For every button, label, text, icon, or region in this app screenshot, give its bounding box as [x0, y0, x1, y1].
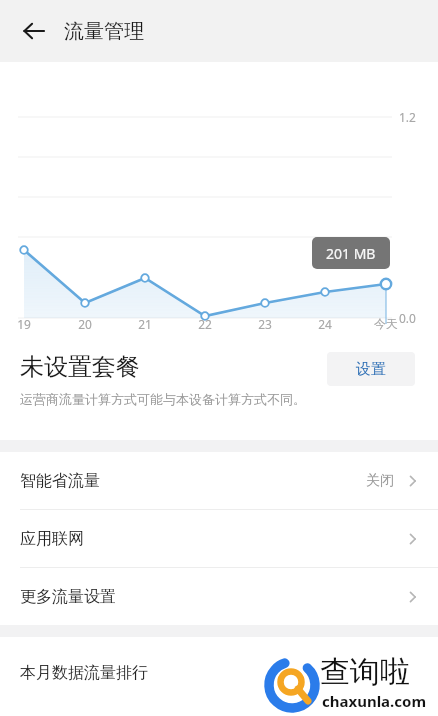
staticText: 流量管理: [64, 19, 144, 44]
button[interactable]: 更多流量设置: [0, 568, 438, 625]
staticText: 关闭: [366, 472, 394, 490]
staticText: 1.2: [399, 109, 416, 125]
staticText: 22: [198, 316, 212, 332]
staticText: 查询啦: [320, 653, 410, 691]
staticText: 本月数据流量排行: [20, 663, 148, 683]
staticText: 应用联网: [20, 529, 84, 549]
staticText: 0.0: [399, 310, 416, 326]
staticText: 201 MB: [326, 244, 376, 263]
staticText: 设置: [356, 360, 386, 379]
button[interactable]: 应用联网: [0, 510, 438, 567]
staticText: 19: [17, 316, 31, 332]
staticText: 今天: [374, 316, 398, 331]
staticText: 21: [138, 316, 152, 332]
button[interactable]: 设置: [327, 352, 415, 386]
staticText: 智能省流量: [20, 471, 100, 491]
button[interactable]: Back: [10, 7, 58, 55]
staticText: 更多流量设置: [20, 587, 116, 607]
staticText: 20: [78, 316, 92, 332]
staticText: 未设置套餐: [20, 352, 140, 382]
staticText: chaxunla.com: [322, 691, 427, 711]
staticText: 23: [258, 316, 272, 332]
button[interactable]: 智能省流量: [0, 452, 438, 509]
staticText: 运营商流量计算方式可能与本设备计算方式不同。: [20, 391, 306, 407]
staticText: 24: [318, 316, 332, 332]
